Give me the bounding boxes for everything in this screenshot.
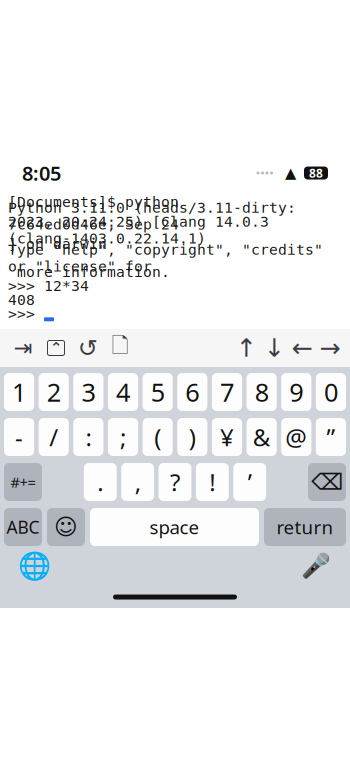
button[interactable]: & xyxy=(247,418,277,456)
button[interactable]: 1 xyxy=(4,373,34,411)
button[interactable]: ; xyxy=(108,418,138,456)
staticText: 7 xyxy=(220,375,234,409)
staticText: 9 xyxy=(289,375,303,409)
staticText: ⌃ xyxy=(50,340,62,356)
staticText: 4 xyxy=(116,375,130,409)
button[interactable]: Delete xyxy=(308,463,346,501)
staticText: ; xyxy=(120,421,126,453)
staticText: ) xyxy=(189,421,196,453)
staticText: 8 xyxy=(255,375,269,409)
button[interactable]: . xyxy=(84,463,117,501)
button[interactable]: ¥ xyxy=(212,418,242,456)
staticText: 🎤 xyxy=(301,552,331,580)
staticText: ¥ xyxy=(220,421,234,453)
staticText: space xyxy=(149,515,199,539)
staticText: more information. xyxy=(8,264,170,280)
staticText: 2023, 20:24:25) [Clang 14.0.3 (clang-140… xyxy=(8,213,269,247)
button[interactable]: Dictation xyxy=(296,548,336,584)
staticText: - xyxy=(15,421,23,453)
staticText: , xyxy=(135,466,141,498)
button[interactable]: space xyxy=(90,508,259,546)
staticText: : xyxy=(85,421,91,453)
button[interactable]: 9 xyxy=(281,373,311,411)
button[interactable]: ! xyxy=(196,463,229,501)
staticText: → xyxy=(319,334,340,362)
button[interactable]: : xyxy=(73,418,103,456)
button[interactable]: 4 xyxy=(108,373,138,411)
button[interactable]: 2 xyxy=(39,373,69,411)
staticText: ⌫ xyxy=(311,469,343,495)
staticText: 88 xyxy=(309,165,323,181)
staticText: ’ xyxy=(248,466,252,498)
button[interactable]: Paste xyxy=(104,333,136,363)
button[interactable]: ’ xyxy=(233,463,266,501)
staticText: Python 3.11.0 (heads/3.11-dirty:7c64ed0d… xyxy=(8,199,296,233)
button[interactable]: @ xyxy=(281,418,311,456)
staticText: ↑ xyxy=(235,334,256,362)
staticText: ! xyxy=(209,466,215,498)
button[interactable]: Next keyboard xyxy=(14,548,54,584)
staticText: 2 xyxy=(47,375,61,409)
button[interactable]: , xyxy=(121,463,154,501)
staticText: 🌐 xyxy=(17,551,50,581)
staticText: ( xyxy=(154,421,161,453)
staticText: ↺ xyxy=(78,334,98,362)
button[interactable]: ( xyxy=(143,418,173,456)
button[interactable]: Down xyxy=(260,333,288,363)
staticText: ← xyxy=(291,334,312,362)
staticText: Type "help", "copyright", "credits" or "… xyxy=(8,241,323,275)
staticText: 408 xyxy=(8,292,35,308)
staticText: 3 xyxy=(81,375,95,409)
staticText: ? xyxy=(170,466,180,498)
staticText: ” xyxy=(326,421,335,453)
staticText: 0 xyxy=(324,375,338,409)
button[interactable]: Left xyxy=(288,333,316,363)
staticText: / xyxy=(49,421,58,453)
button[interactable]: 6 xyxy=(177,373,207,411)
staticText: return xyxy=(276,515,333,539)
button[interactable]: ? xyxy=(159,463,191,501)
button[interactable]: More symbols xyxy=(4,463,42,501)
staticText: 5 xyxy=(151,375,165,409)
button[interactable]: return xyxy=(264,508,346,546)
staticText: [Documents]$ python xyxy=(8,194,179,210)
button[interactable]: Right xyxy=(316,333,344,363)
button[interactable]: 8 xyxy=(247,373,277,411)
staticText: 6 xyxy=(185,375,199,409)
button[interactable]: 7 xyxy=(212,373,242,411)
staticText: . xyxy=(97,466,103,498)
staticText: #+= xyxy=(10,472,35,492)
staticText: ABC xyxy=(6,515,39,538)
button[interactable]: ) xyxy=(177,418,207,456)
staticText: ↓ xyxy=(263,334,284,362)
button[interactable]: Tab xyxy=(6,333,40,363)
button[interactable]: Emoji xyxy=(47,508,85,546)
staticText: 1 xyxy=(12,375,26,409)
button[interactable]: Control xyxy=(40,333,72,363)
button[interactable]: ABC xyxy=(4,508,42,546)
staticText: & xyxy=(253,421,271,453)
staticText: ☺ xyxy=(54,514,78,540)
staticText: ] on darwin xyxy=(8,236,107,252)
button[interactable]: Up xyxy=(232,333,260,363)
button[interactable]: ” xyxy=(316,418,346,456)
staticText: >>> 12*34 xyxy=(8,278,89,294)
button[interactable]: Undo xyxy=(72,333,104,363)
button[interactable]: - xyxy=(4,418,34,456)
button[interactable]: 5 xyxy=(143,373,173,411)
button[interactable]: 0 xyxy=(316,373,346,411)
staticText: ⇥ xyxy=(13,335,32,361)
button[interactable]: / xyxy=(39,418,69,456)
staticText: @ xyxy=(285,421,307,453)
staticText: >>> xyxy=(8,306,44,322)
staticText: 8:05 xyxy=(22,160,61,186)
staticText: ▲ xyxy=(285,165,296,181)
button[interactable]: 3 xyxy=(73,373,103,411)
staticText: 🗋 xyxy=(111,330,128,366)
